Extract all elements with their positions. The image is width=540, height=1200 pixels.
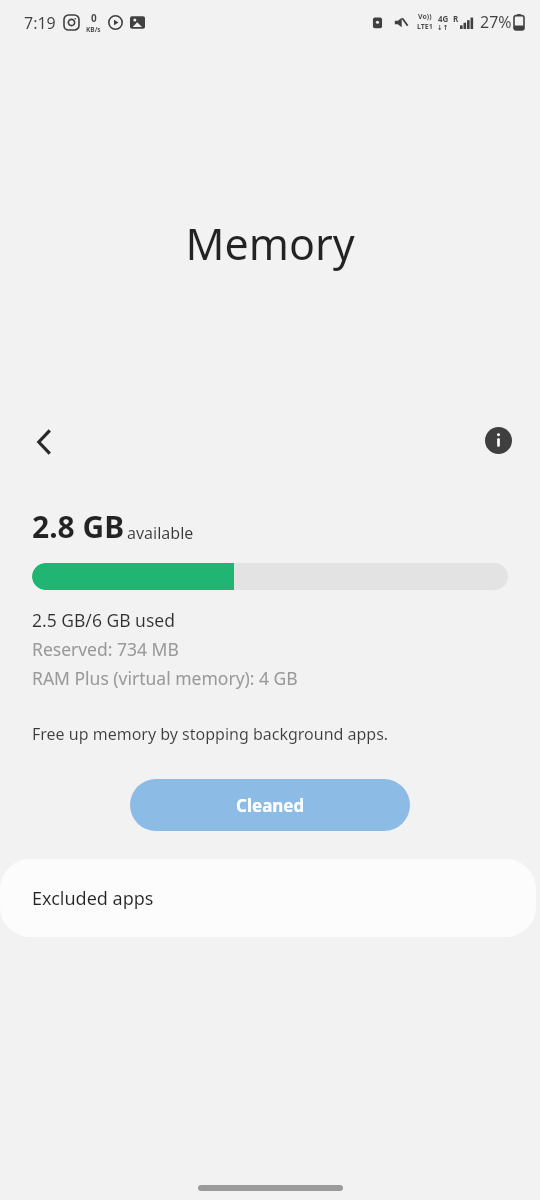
staticText: ↓↑ [437,24,449,32]
button[interactable]: Information [472,414,524,466]
staticText: 4G [438,13,449,24]
staticText: R [453,13,459,24]
staticText: 7:19 [24,12,56,34]
staticText: Memory [0,214,540,273]
button[interactable]: Back [14,412,74,472]
button[interactable]: Cleaned [130,779,410,831]
staticText: Free up memory by stopping background ap… [32,723,389,745]
button[interactable]: Excluded apps [0,859,536,937]
staticText: Cleaned [236,794,305,817]
staticText: RAM Plus (virtual memory): 4 GB [32,666,298,690]
staticText: KB/s [86,25,101,34]
staticText: 27% [480,11,512,33]
staticText: 0 [91,11,97,25]
staticText: 2.8 GB [32,506,125,547]
staticText: available [127,522,194,544]
staticText: 2.5 GB/6 GB used [32,608,175,632]
staticText: LTE1 [417,22,433,32]
staticText: Excluded apps [32,886,154,911]
staticText: Vo)) [418,12,432,22]
staticText: Reserved: 734 MB [32,637,179,661]
